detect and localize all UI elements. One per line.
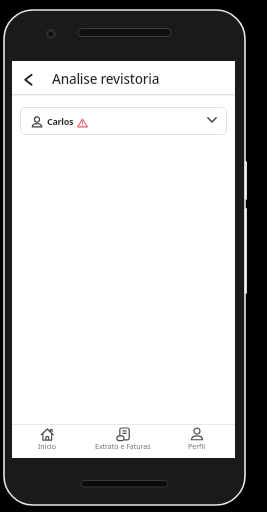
- staticText: Extrato e Faturas: [95, 442, 151, 452]
- staticText: Carlos: [47, 115, 74, 127]
- staticText: Inicio: [38, 442, 56, 452]
- button[interactable]: Perfil: [160, 425, 234, 458]
- button[interactable]: Carlos: [20, 107, 227, 135]
- button[interactable]: Inicio: [9, 425, 84, 458]
- staticText: Analise revistoria: [52, 70, 160, 88]
- button[interactable]: [12, 61, 45, 94]
- staticText: Perfil: [188, 442, 206, 452]
- button[interactable]: Extrato e Faturas: [86, 425, 160, 458]
